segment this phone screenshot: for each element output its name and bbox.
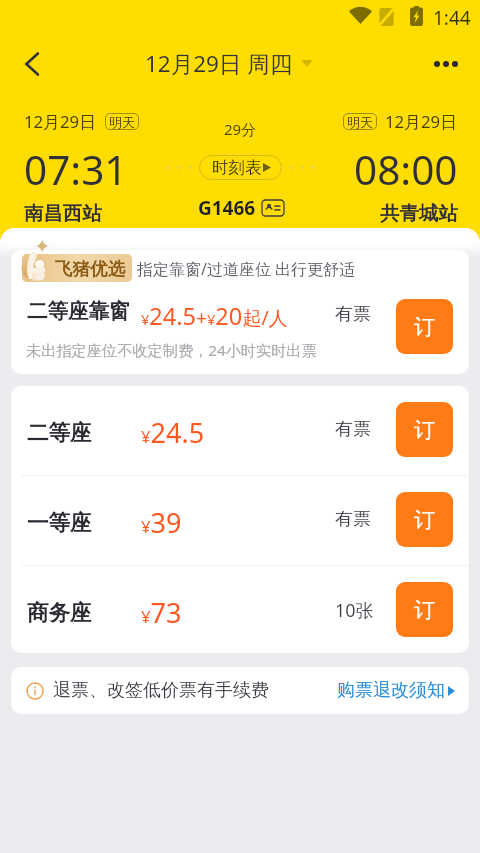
button[interactable]: 订 xyxy=(396,492,453,547)
staticText: 时刻表 xyxy=(212,157,262,178)
staticText: 有票 xyxy=(335,508,371,531)
button[interactable]: 时刻表 xyxy=(199,155,282,180)
staticText: 商务座 xyxy=(27,599,92,626)
staticText: 退票、改签低价票有手续费 xyxy=(53,679,269,702)
staticText: 订 xyxy=(414,417,435,443)
staticText: 12月29日 xyxy=(24,110,97,133)
staticText: 购票退改须知 xyxy=(337,679,445,702)
staticText: 南昌西站 xyxy=(24,201,102,225)
staticText: 二等座 xyxy=(27,419,92,446)
button[interactable]: 商务座 xyxy=(11,566,469,653)
staticText: 08:00 xyxy=(354,142,458,197)
button[interactable]: 12月29日 周四 xyxy=(141,44,317,83)
staticText: 订 xyxy=(414,507,435,533)
button[interactable]: 订 xyxy=(396,402,453,457)
staticText: 共青城站 xyxy=(380,201,458,225)
staticText: 12月29日 周四 xyxy=(145,48,293,79)
button[interactable]: 二等座 xyxy=(11,386,469,475)
staticText: G1466 xyxy=(198,195,256,221)
staticText: 有票 xyxy=(335,418,371,441)
button[interactable]: Back xyxy=(10,42,54,86)
staticText: 订 xyxy=(414,597,435,623)
staticText: 有票 xyxy=(335,303,371,326)
staticText: 二等座靠窗 xyxy=(27,298,130,324)
staticText: 明天 xyxy=(109,114,135,130)
staticText: 29分 xyxy=(224,119,257,139)
staticText: 指定靠窗/过道座位 出行更舒适 xyxy=(137,258,356,280)
staticText: ¥39 xyxy=(141,504,182,541)
staticText: ¥24.5 xyxy=(141,414,205,451)
button[interactable]: More options xyxy=(424,42,468,86)
staticText: 未出指定座位不收定制费，24小时实时出票 xyxy=(26,340,317,361)
staticText: 明天 xyxy=(347,114,373,130)
staticText: 一等座 xyxy=(27,509,92,536)
button[interactable]: 订 xyxy=(396,582,453,637)
button[interactable]: 订 xyxy=(396,299,453,354)
staticText: ¥73 xyxy=(141,594,182,631)
staticText: 07:31 xyxy=(24,142,128,197)
staticText: 1:44 xyxy=(433,5,471,31)
staticText: 10张 xyxy=(335,598,374,623)
staticText: 12月29日 xyxy=(385,110,458,133)
button[interactable]: 退票、改签低价票有手续费 xyxy=(11,667,469,714)
button[interactable]: 指定靠窗/过道座位 出行更舒适 xyxy=(11,250,469,374)
staticText: 飞猪优选 xyxy=(55,258,125,280)
button[interactable]: 一等座 xyxy=(11,476,469,565)
staticText: 订 xyxy=(414,314,435,340)
staticText: ¥24.5+¥20起/人 xyxy=(141,300,288,332)
